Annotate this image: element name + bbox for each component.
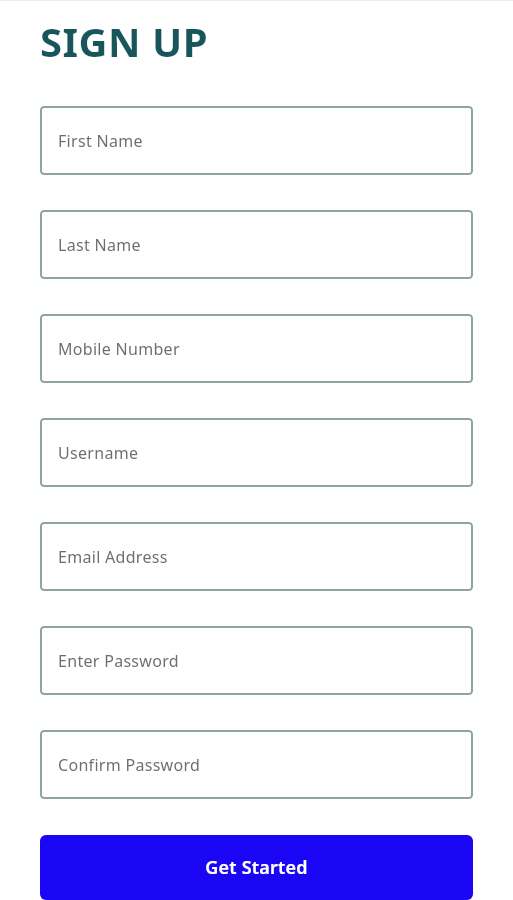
button[interactable]: Last Name bbox=[40, 210, 473, 279]
button[interactable]: Username bbox=[40, 418, 473, 487]
button[interactable]: Mobile Number bbox=[40, 314, 473, 383]
button[interactable]: Confirm Password bbox=[40, 730, 473, 799]
button[interactable]: First Name bbox=[40, 106, 473, 175]
staticText: Email Address bbox=[58, 546, 168, 568]
staticText: Get Started bbox=[205, 855, 308, 880]
button[interactable]: Enter Password bbox=[40, 626, 473, 695]
staticText: Last Name bbox=[58, 234, 141, 256]
button[interactable]: Email Address bbox=[40, 522, 473, 591]
staticText: SIGN UP bbox=[40, 14, 209, 68]
staticText: Confirm Password bbox=[58, 754, 201, 776]
button[interactable]: Get Started bbox=[40, 835, 473, 900]
staticText: Mobile Number bbox=[58, 338, 180, 360]
staticText: First Name bbox=[58, 130, 143, 152]
staticText: Username bbox=[58, 442, 139, 464]
staticText: Enter Password bbox=[58, 650, 179, 672]
